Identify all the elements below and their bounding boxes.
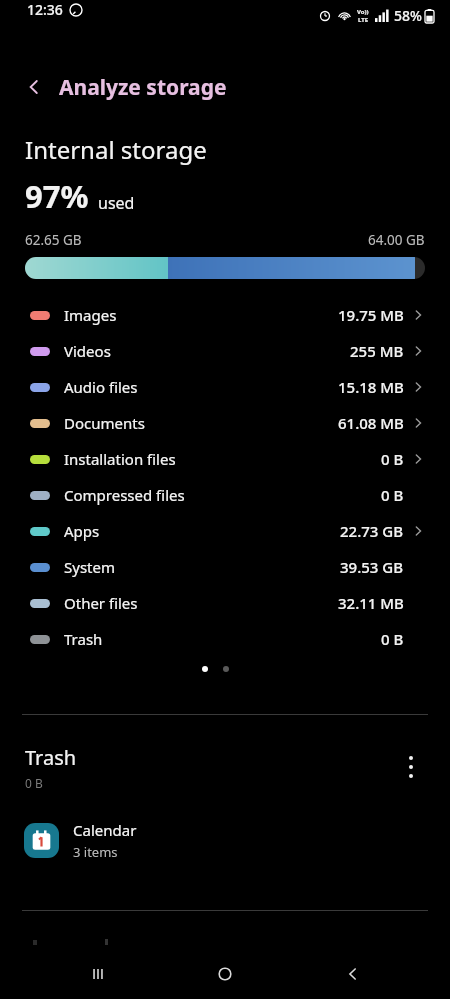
staticText: 64.00 GB — [368, 231, 425, 249]
button[interactable]: System — [0, 549, 450, 585]
button[interactable]: Calendar — [0, 813, 450, 867]
staticText: Other files — [64, 593, 138, 613]
button[interactable]: Images — [0, 297, 450, 333]
button[interactable]: Audio files — [0, 369, 450, 405]
staticText: 0 B — [381, 629, 404, 649]
staticText: System — [64, 557, 115, 577]
staticText: used — [98, 192, 135, 214]
staticText: 0 B — [381, 449, 404, 469]
staticText: Images — [64, 305, 117, 325]
staticText: Audio files — [64, 377, 138, 397]
staticText: 62.65 GB — [25, 231, 82, 249]
staticText: Analyze storage — [59, 73, 227, 102]
staticText: Installation files — [64, 449, 176, 469]
staticText: Videos — [64, 341, 111, 361]
button[interactable]: Back — [14, 67, 54, 107]
staticText: Trash — [64, 629, 103, 649]
staticText: Vo)) — [357, 8, 369, 16]
button[interactable]: Apps — [0, 513, 450, 549]
staticText: 3 items — [73, 843, 118, 861]
button[interactable]: Home — [195, 949, 255, 999]
button[interactable]: Installation files — [0, 441, 450, 477]
staticText: 61.08 MB — [338, 413, 404, 433]
staticText: 255 MB — [350, 341, 404, 361]
staticText: Compressed files — [64, 485, 185, 505]
staticText: 12:36 — [27, 0, 63, 19]
staticText: Apps — [64, 521, 100, 541]
staticText: 19.75 MB — [338, 305, 404, 325]
staticText: 58% — [394, 6, 422, 25]
staticText: 32.11 MB — [338, 593, 404, 613]
button[interactable]: Documents — [0, 405, 450, 441]
staticText: Trash — [25, 744, 77, 771]
button[interactable]: Compressed files — [0, 477, 450, 513]
button[interactable]: Trash — [0, 621, 450, 657]
button[interactable]: Back — [323, 949, 383, 999]
staticText: 0 B — [381, 485, 404, 505]
staticText: 15.18 MB — [338, 377, 404, 397]
staticText: Internal storage — [25, 133, 207, 166]
button[interactable]: More options — [394, 750, 428, 784]
staticText: LTE — [358, 16, 369, 24]
staticText: Calendar — [73, 820, 137, 840]
button[interactable]: Other files — [0, 585, 450, 621]
button[interactable]: Videos — [0, 333, 450, 369]
button[interactable]: Recent apps — [68, 949, 128, 999]
staticText: 0 B — [25, 775, 43, 791]
staticText: 39.53 GB — [340, 557, 404, 577]
staticText: Documents — [64, 413, 145, 433]
staticText: 22.73 GB — [340, 521, 404, 541]
staticText: 97% — [25, 175, 89, 217]
